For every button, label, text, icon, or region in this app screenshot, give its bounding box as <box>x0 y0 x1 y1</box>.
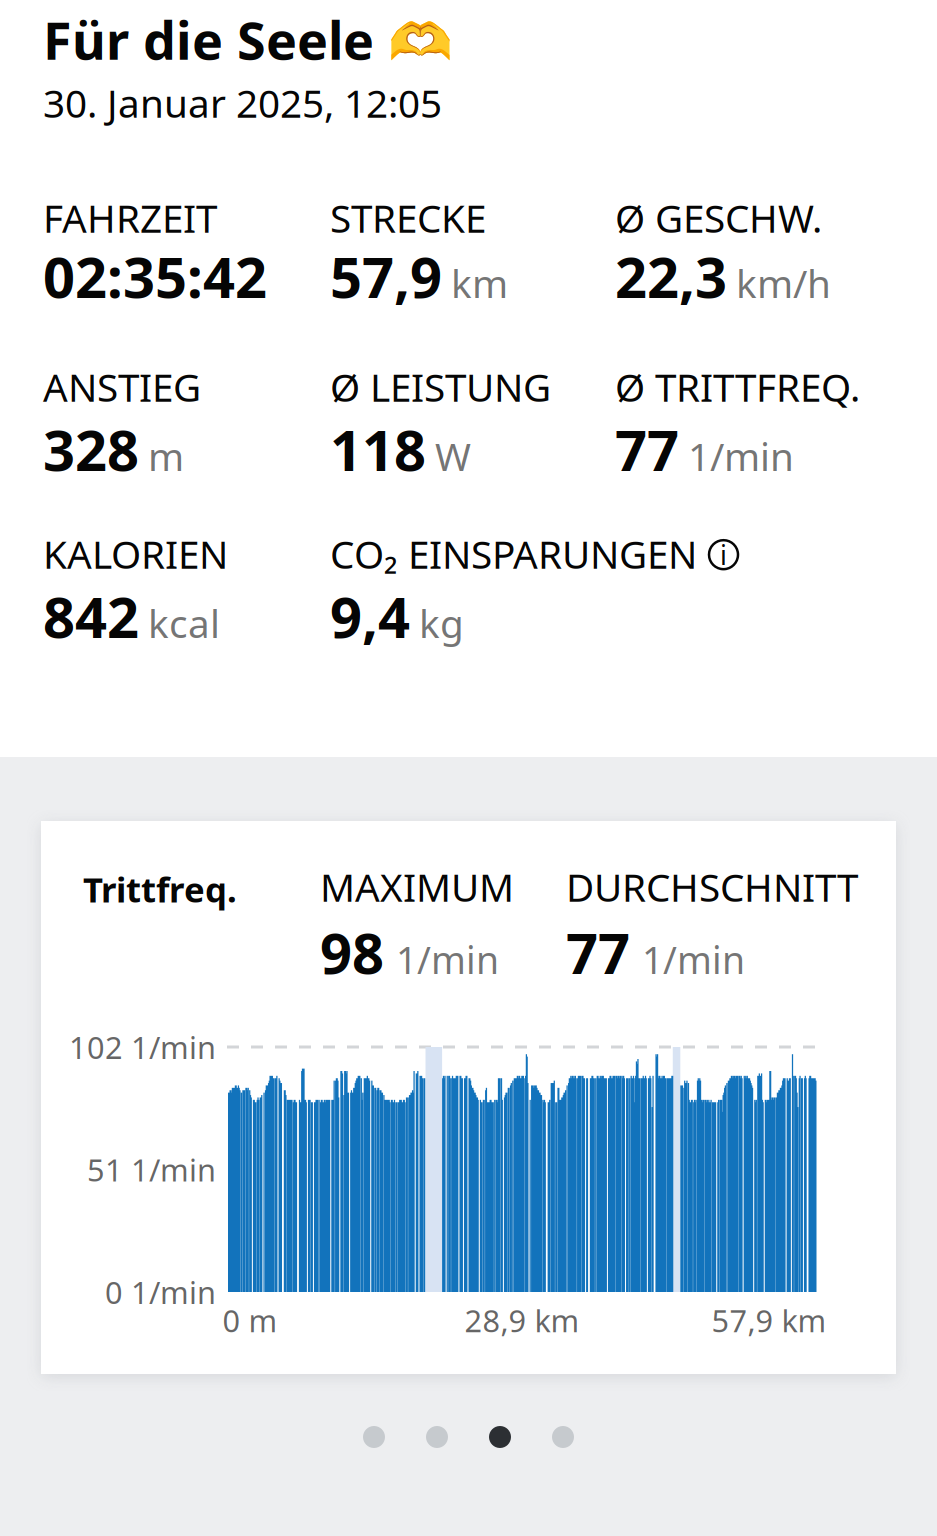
staticText: km <box>451 257 508 308</box>
staticText: DURCHSCHNITT <box>566 861 858 912</box>
button[interactable]: Page 4 <box>552 1426 574 1448</box>
staticText: 57,9 km <box>711 1300 826 1341</box>
staticText: W <box>435 430 471 481</box>
staticText: Trittfreq. <box>83 866 237 912</box>
button[interactable]: Page 3 <box>489 1426 511 1448</box>
staticText: 22,3 <box>615 239 727 313</box>
staticText: Für die Seele 🫶 <box>43 5 453 74</box>
staticText: Ø TRITTFREQ. <box>615 361 860 412</box>
staticText: 57,9 <box>330 239 442 313</box>
staticText: Ø LEISTUNG <box>330 361 551 412</box>
staticText: 1/min <box>688 430 794 481</box>
staticText: i <box>720 537 727 572</box>
staticText: 51 1/min <box>87 1149 216 1190</box>
staticText: 9,4 <box>330 579 410 653</box>
button[interactable]: Page 1 <box>363 1426 385 1448</box>
staticText: 02:35:42 <box>43 239 267 313</box>
staticText: Ø GESCHW. <box>615 192 822 243</box>
staticText: 98 <box>320 915 384 989</box>
staticText: ANSTIEG <box>43 361 201 412</box>
staticText: 842 <box>43 579 139 653</box>
staticText: 0 1/min <box>105 1272 216 1312</box>
staticText: STRECKE <box>330 192 486 243</box>
staticText: 77 <box>566 915 630 989</box>
staticText: 28,9 km <box>464 1300 579 1341</box>
staticText: MAXIMUM <box>320 861 514 912</box>
staticText: 1/min <box>642 935 745 984</box>
staticText: 102 1/min <box>69 1027 216 1067</box>
staticText: KALORIEN <box>43 528 228 579</box>
button[interactable]: Page 2 <box>426 1426 448 1448</box>
staticText: 77 <box>615 412 679 486</box>
staticText: CO₂ EINSPARUNGEN <box>330 528 697 579</box>
staticText: 328 <box>43 412 139 486</box>
staticText: FAHRZEIT <box>43 192 217 243</box>
staticText: m <box>148 430 184 481</box>
staticText: kcal <box>148 597 220 648</box>
button[interactable]: Trittfreq. <box>41 821 896 1374</box>
staticText: kg <box>419 597 464 648</box>
button[interactable]: Über CO₂ Einsparungen <box>709 540 738 569</box>
staticText: 0 m <box>222 1300 277 1341</box>
staticText: 30. Januar 2025, 12:05 <box>43 77 442 128</box>
staticText: 118 <box>330 412 426 486</box>
staticText: km/h <box>736 257 831 308</box>
staticText: 1/min <box>396 935 499 984</box>
